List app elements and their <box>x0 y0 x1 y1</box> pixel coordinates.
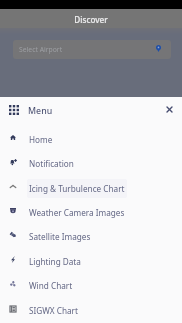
staticText: Discover <box>0 14 182 25</box>
button[interactable]: Menu <box>0 97 182 123</box>
button[interactable]: Satellite Images <box>0 222 182 246</box>
staticText: Home <box>29 134 53 145</box>
staticText: Satellite Images <box>29 231 91 242</box>
button[interactable]: Lighting Data <box>0 247 182 271</box>
button[interactable]: Select Airport <box>13 40 171 59</box>
staticText: Lighting Data <box>29 256 81 267</box>
staticText: Weather Camera Images <box>29 207 125 218</box>
staticText: Select Airport <box>19 45 63 54</box>
button[interactable]: Wind Chart <box>0 271 182 295</box>
other: Use my location <box>156 45 161 52</box>
button[interactable]: Notification <box>0 149 182 173</box>
staticText: Notification <box>29 158 74 169</box>
button[interactable]: SIGWX Chart <box>0 296 182 320</box>
button[interactable]: Close menu <box>161 101 178 118</box>
button[interactable]: Home <box>0 125 182 149</box>
staticText: Icing & Turbulence Chart <box>29 183 125 194</box>
staticText: SIGWX Chart <box>29 305 78 316</box>
button[interactable]: Icing & Turbulence Chart <box>0 174 182 198</box>
button[interactable]: Weather Camera Images <box>0 198 182 222</box>
staticText: Wind Chart <box>29 280 73 291</box>
staticText: Menu <box>28 105 53 117</box>
